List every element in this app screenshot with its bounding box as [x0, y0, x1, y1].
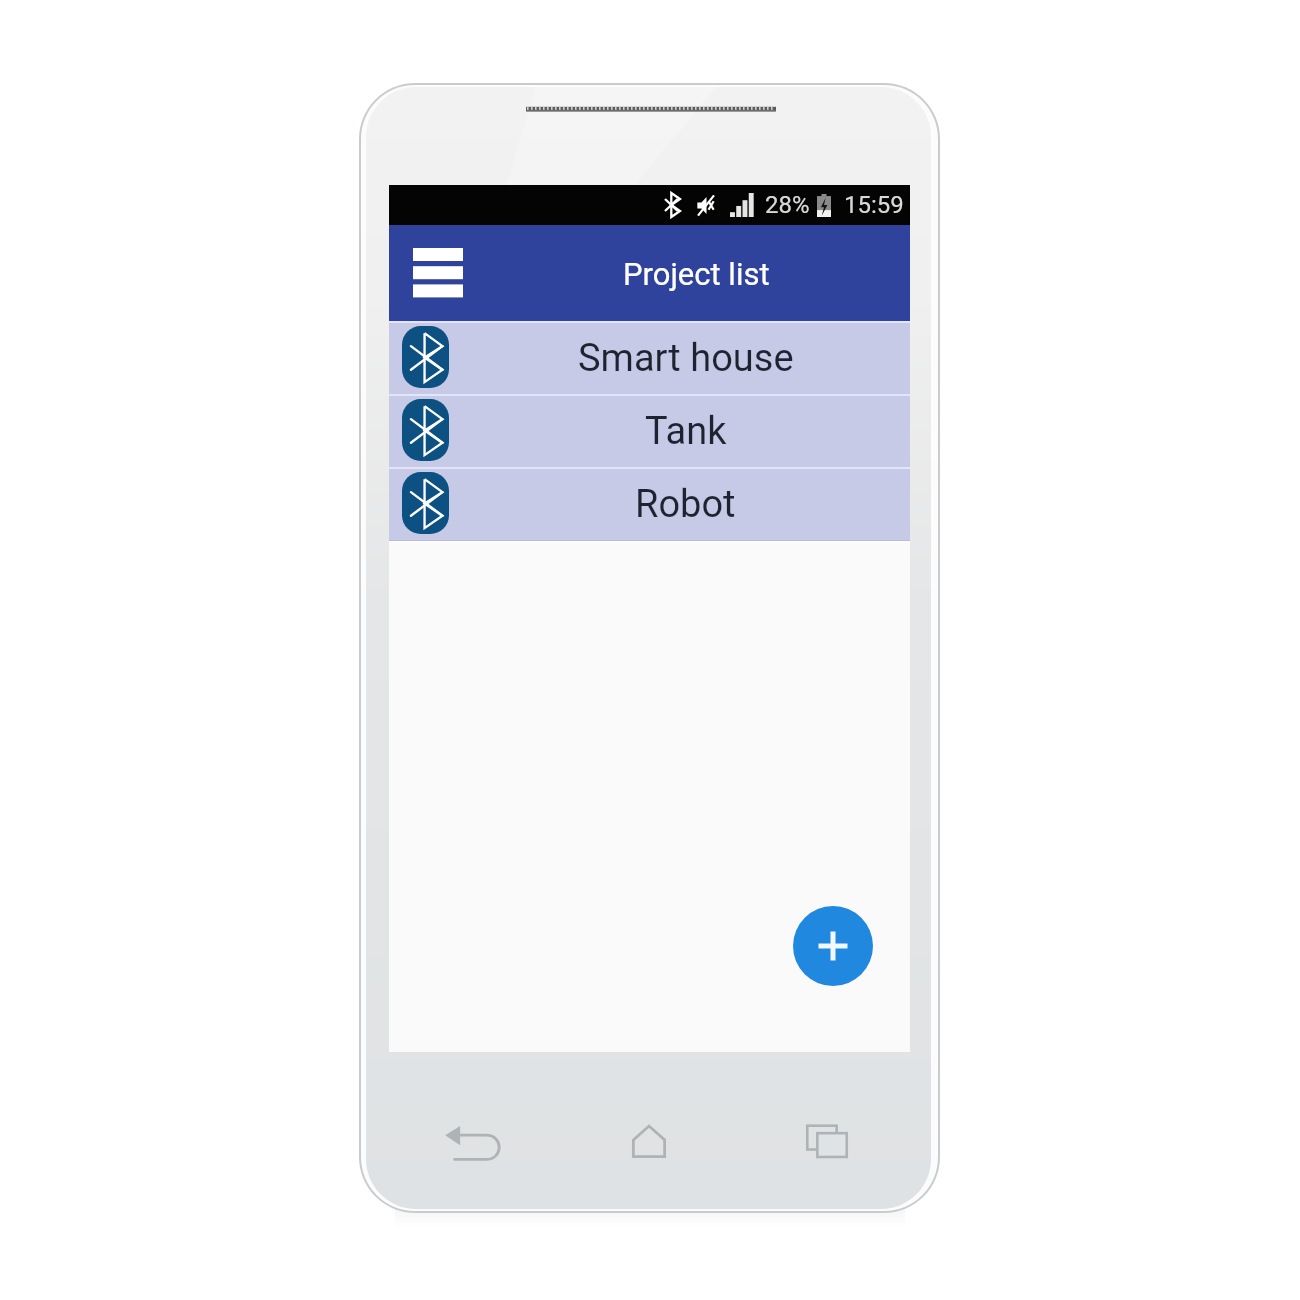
staticText: 15:59 [844, 191, 904, 219]
staticText: Smart house [578, 336, 794, 381]
button[interactable]: Tank [389, 396, 910, 467]
button[interactable]: Recent apps [806, 1124, 848, 1158]
button[interactable]: Robot [389, 469, 910, 540]
staticText: Tank [645, 409, 727, 454]
staticText: Robot [635, 482, 736, 527]
staticText: Project list [623, 256, 770, 292]
button[interactable]: Home [632, 1124, 666, 1158]
button[interactable]: Smart house [389, 323, 910, 394]
button[interactable]: Open navigation drawer [408, 240, 468, 306]
staticText: 28% [765, 191, 810, 219]
button[interactable]: Back [444, 1122, 506, 1166]
button[interactable]: Add new project [793, 906, 873, 986]
